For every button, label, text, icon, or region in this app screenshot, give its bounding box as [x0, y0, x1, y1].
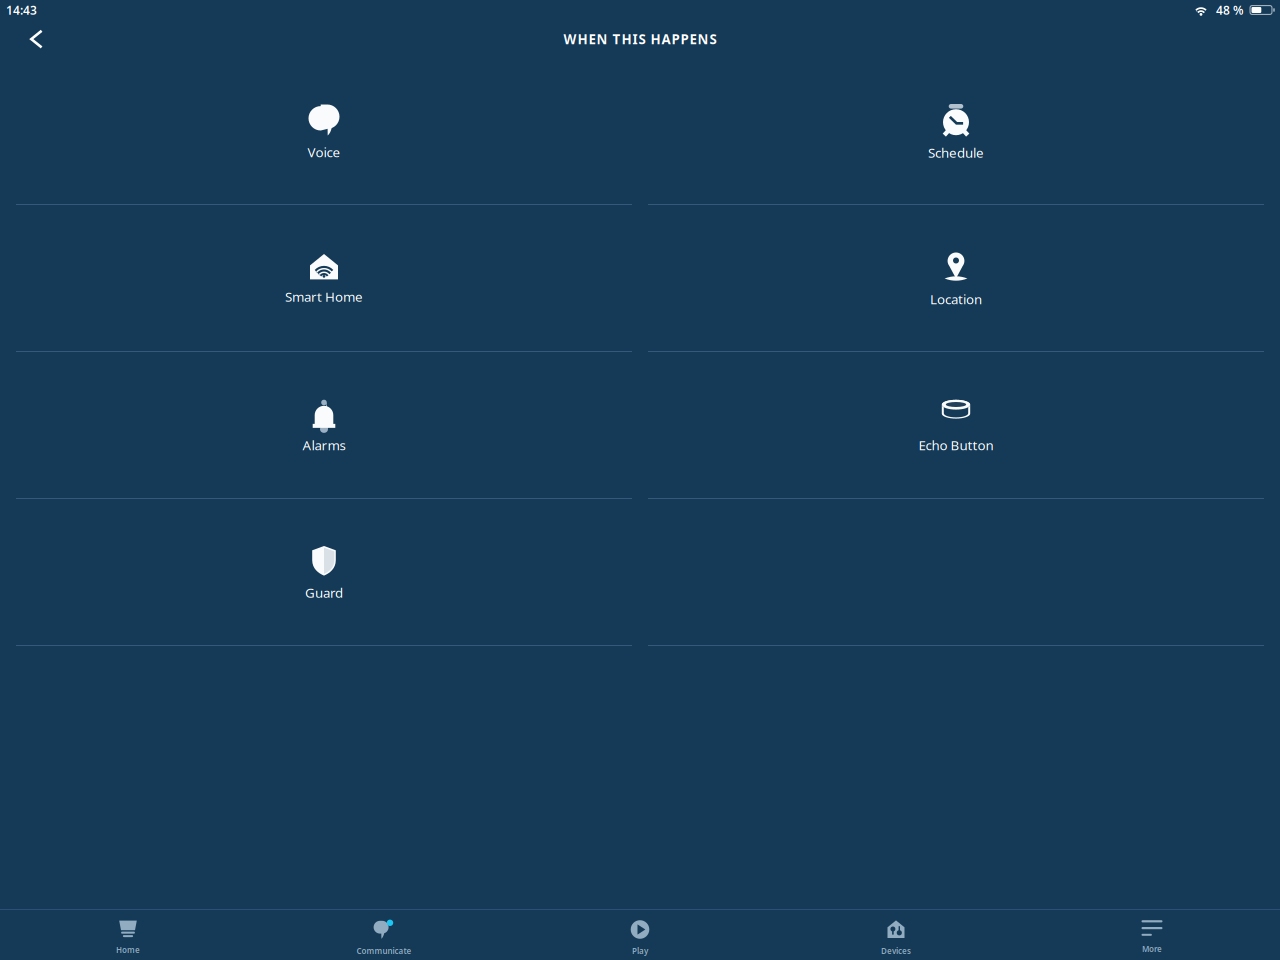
staticText: Location	[930, 290, 982, 308]
staticText: W H E N T H I S H A P P E N S	[563, 30, 716, 48]
staticText: Echo Button	[918, 436, 993, 454]
staticText: Devices	[881, 946, 911, 956]
staticText: Smart Home	[285, 288, 363, 305]
button[interactable]: More	[1024, 910, 1280, 960]
button[interactable]: Voice	[16, 58, 632, 204]
button[interactable]: Alarms	[16, 352, 632, 498]
button[interactable]: Devices	[768, 910, 1024, 960]
staticText: 48 %	[1216, 2, 1244, 18]
button[interactable]: Communicate	[256, 910, 512, 960]
button[interactable]: Location	[648, 205, 1264, 351]
staticText: More	[1142, 944, 1162, 954]
button[interactable]: Smart Home	[16, 205, 632, 351]
button[interactable]: Home	[0, 910, 256, 960]
button[interactable]: Guard	[16, 499, 632, 645]
staticText: Home	[116, 945, 140, 955]
staticText: Voice	[307, 143, 340, 161]
button[interactable]: Play	[512, 910, 768, 960]
staticText: Alarms	[302, 436, 345, 454]
staticText: Play	[632, 946, 648, 956]
button[interactable]: Echo Button	[648, 352, 1264, 498]
staticText: Schedule	[928, 144, 984, 161]
staticText: Guard	[305, 584, 343, 601]
button[interactable]: Back	[0, 20, 59, 57]
button[interactable]: Schedule	[648, 58, 1264, 204]
staticText: 14:43	[6, 2, 37, 18]
staticText: Communicate	[356, 946, 411, 956]
